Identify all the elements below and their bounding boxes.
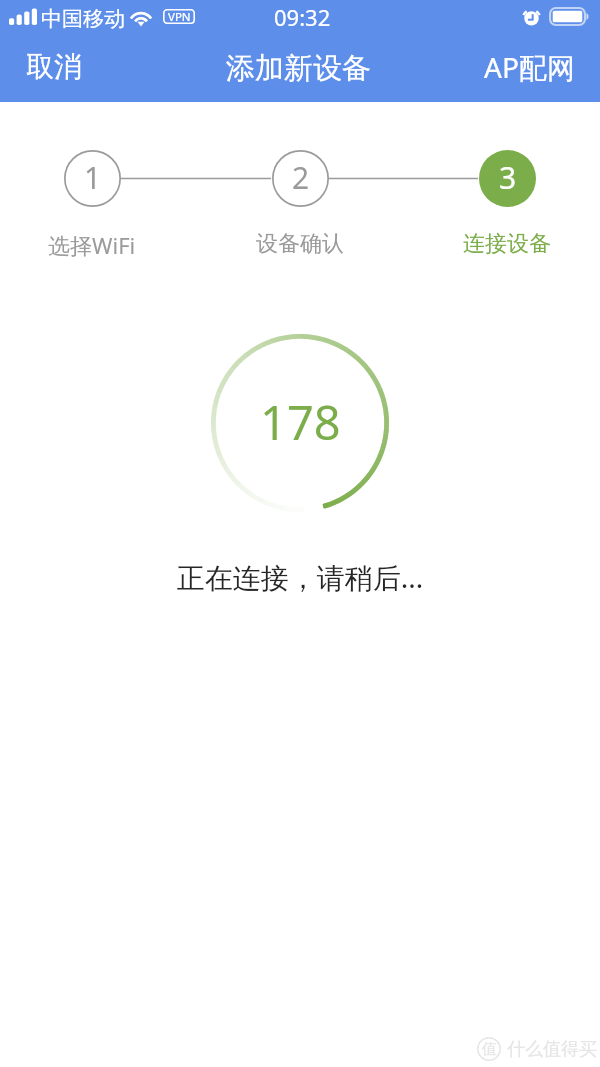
staticText: 178 <box>260 390 341 454</box>
staticText: AP配网 <box>484 48 575 85</box>
button[interactable]: 3 <box>432 150 582 258</box>
staticText: 取消 <box>26 49 82 84</box>
button[interactable]: 2 <box>225 150 375 258</box>
button[interactable]: 1 <box>17 150 167 260</box>
staticText: 添加新设备 <box>226 50 371 87</box>
staticText: 选择WiFi <box>48 230 136 260</box>
staticText: 2 <box>292 157 310 198</box>
button[interactable]: AP配网 <box>458 37 600 102</box>
staticText: 中国移动 <box>41 6 125 32</box>
staticText: 3 <box>499 157 517 198</box>
staticText: 连接设备 <box>463 230 551 258</box>
staticText: 正在连接，请稍后... <box>0 558 600 596</box>
button[interactable]: 取消 <box>0 38 108 101</box>
staticText: 什么值得买 <box>507 1038 597 1061</box>
other: Connecting countdown 178 seconds <box>211 334 389 512</box>
staticText: VPN <box>168 9 191 24</box>
staticText: 1 <box>84 157 102 198</box>
staticText: 值 <box>482 1040 497 1059</box>
staticText: 09:32 <box>274 2 331 32</box>
staticText: 设备确认 <box>256 230 344 258</box>
